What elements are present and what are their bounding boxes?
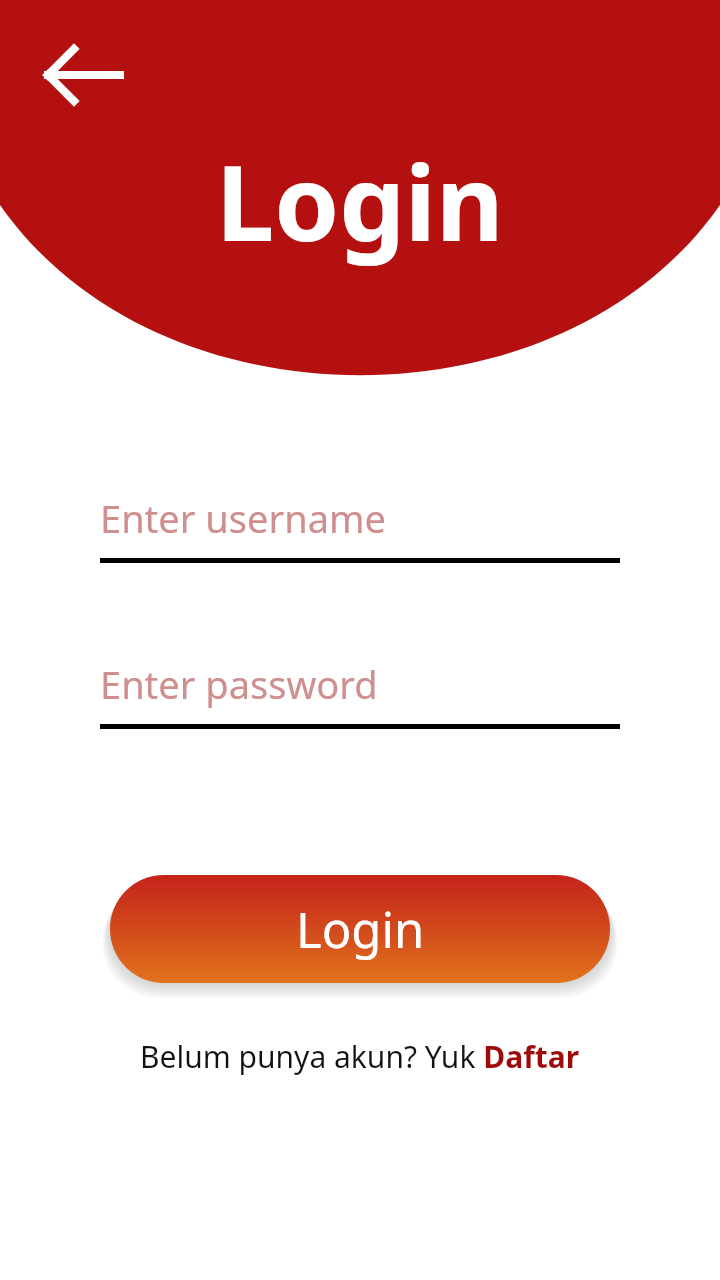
button[interactable]: Enter username xyxy=(100,492,620,563)
staticText: Enter username xyxy=(100,492,386,544)
staticText: Login xyxy=(296,896,425,963)
staticText: Login xyxy=(216,130,504,272)
button[interactable]: Belum punya akun? Yuk Daftar xyxy=(140,1036,580,1077)
staticText: Enter password xyxy=(100,658,378,710)
button[interactable]: Enter password xyxy=(100,658,620,729)
staticText: Belum punya akun? Yuk Daftar xyxy=(140,1036,580,1077)
button[interactable]: Login xyxy=(110,875,610,983)
button[interactable]: Back xyxy=(34,44,126,106)
